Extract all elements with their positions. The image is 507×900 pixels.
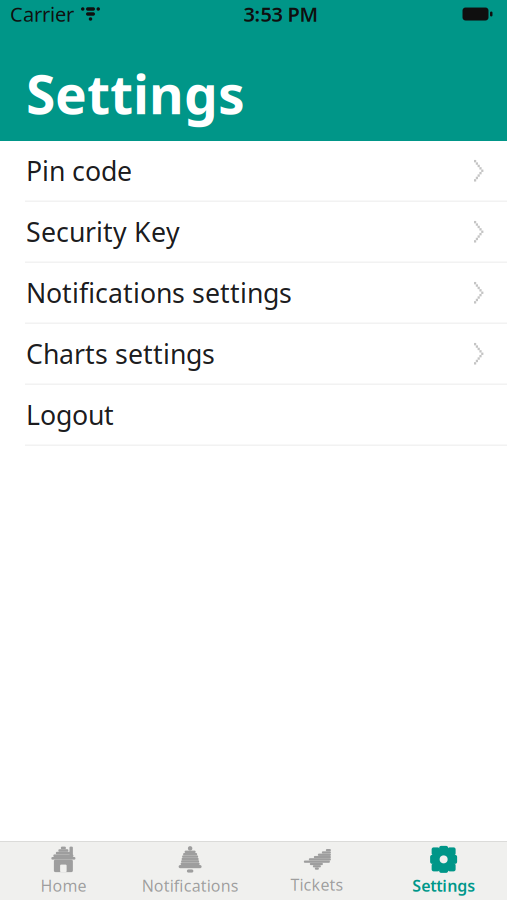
staticText: Tickets: [290, 874, 343, 895]
staticText: Logout: [26, 397, 114, 432]
button[interactable]: Pin code: [0, 141, 507, 202]
staticText: Security Key: [26, 214, 180, 249]
staticText: Home: [40, 875, 86, 896]
button[interactable]: Charts settings: [0, 324, 507, 385]
staticText: Charts settings: [26, 336, 215, 371]
button[interactable]: Security Key: [0, 202, 507, 263]
staticText: 3:53 PM: [243, 1, 318, 27]
staticText: Notifications: [142, 875, 239, 896]
staticText: Settings: [412, 875, 475, 896]
staticText: Carrier: [10, 1, 74, 27]
staticText: Notifications settings: [26, 275, 292, 310]
button[interactable]: Notifications settings: [0, 263, 507, 324]
button[interactable]: Logout: [0, 385, 507, 446]
button[interactable]: Settings: [380, 842, 507, 900]
staticText: Settings: [26, 58, 245, 129]
staticText: Pin code: [26, 153, 132, 188]
button[interactable]: Home: [0, 842, 127, 900]
button[interactable]: Notifications: [127, 842, 254, 900]
button[interactable]: Tickets: [253, 842, 380, 900]
